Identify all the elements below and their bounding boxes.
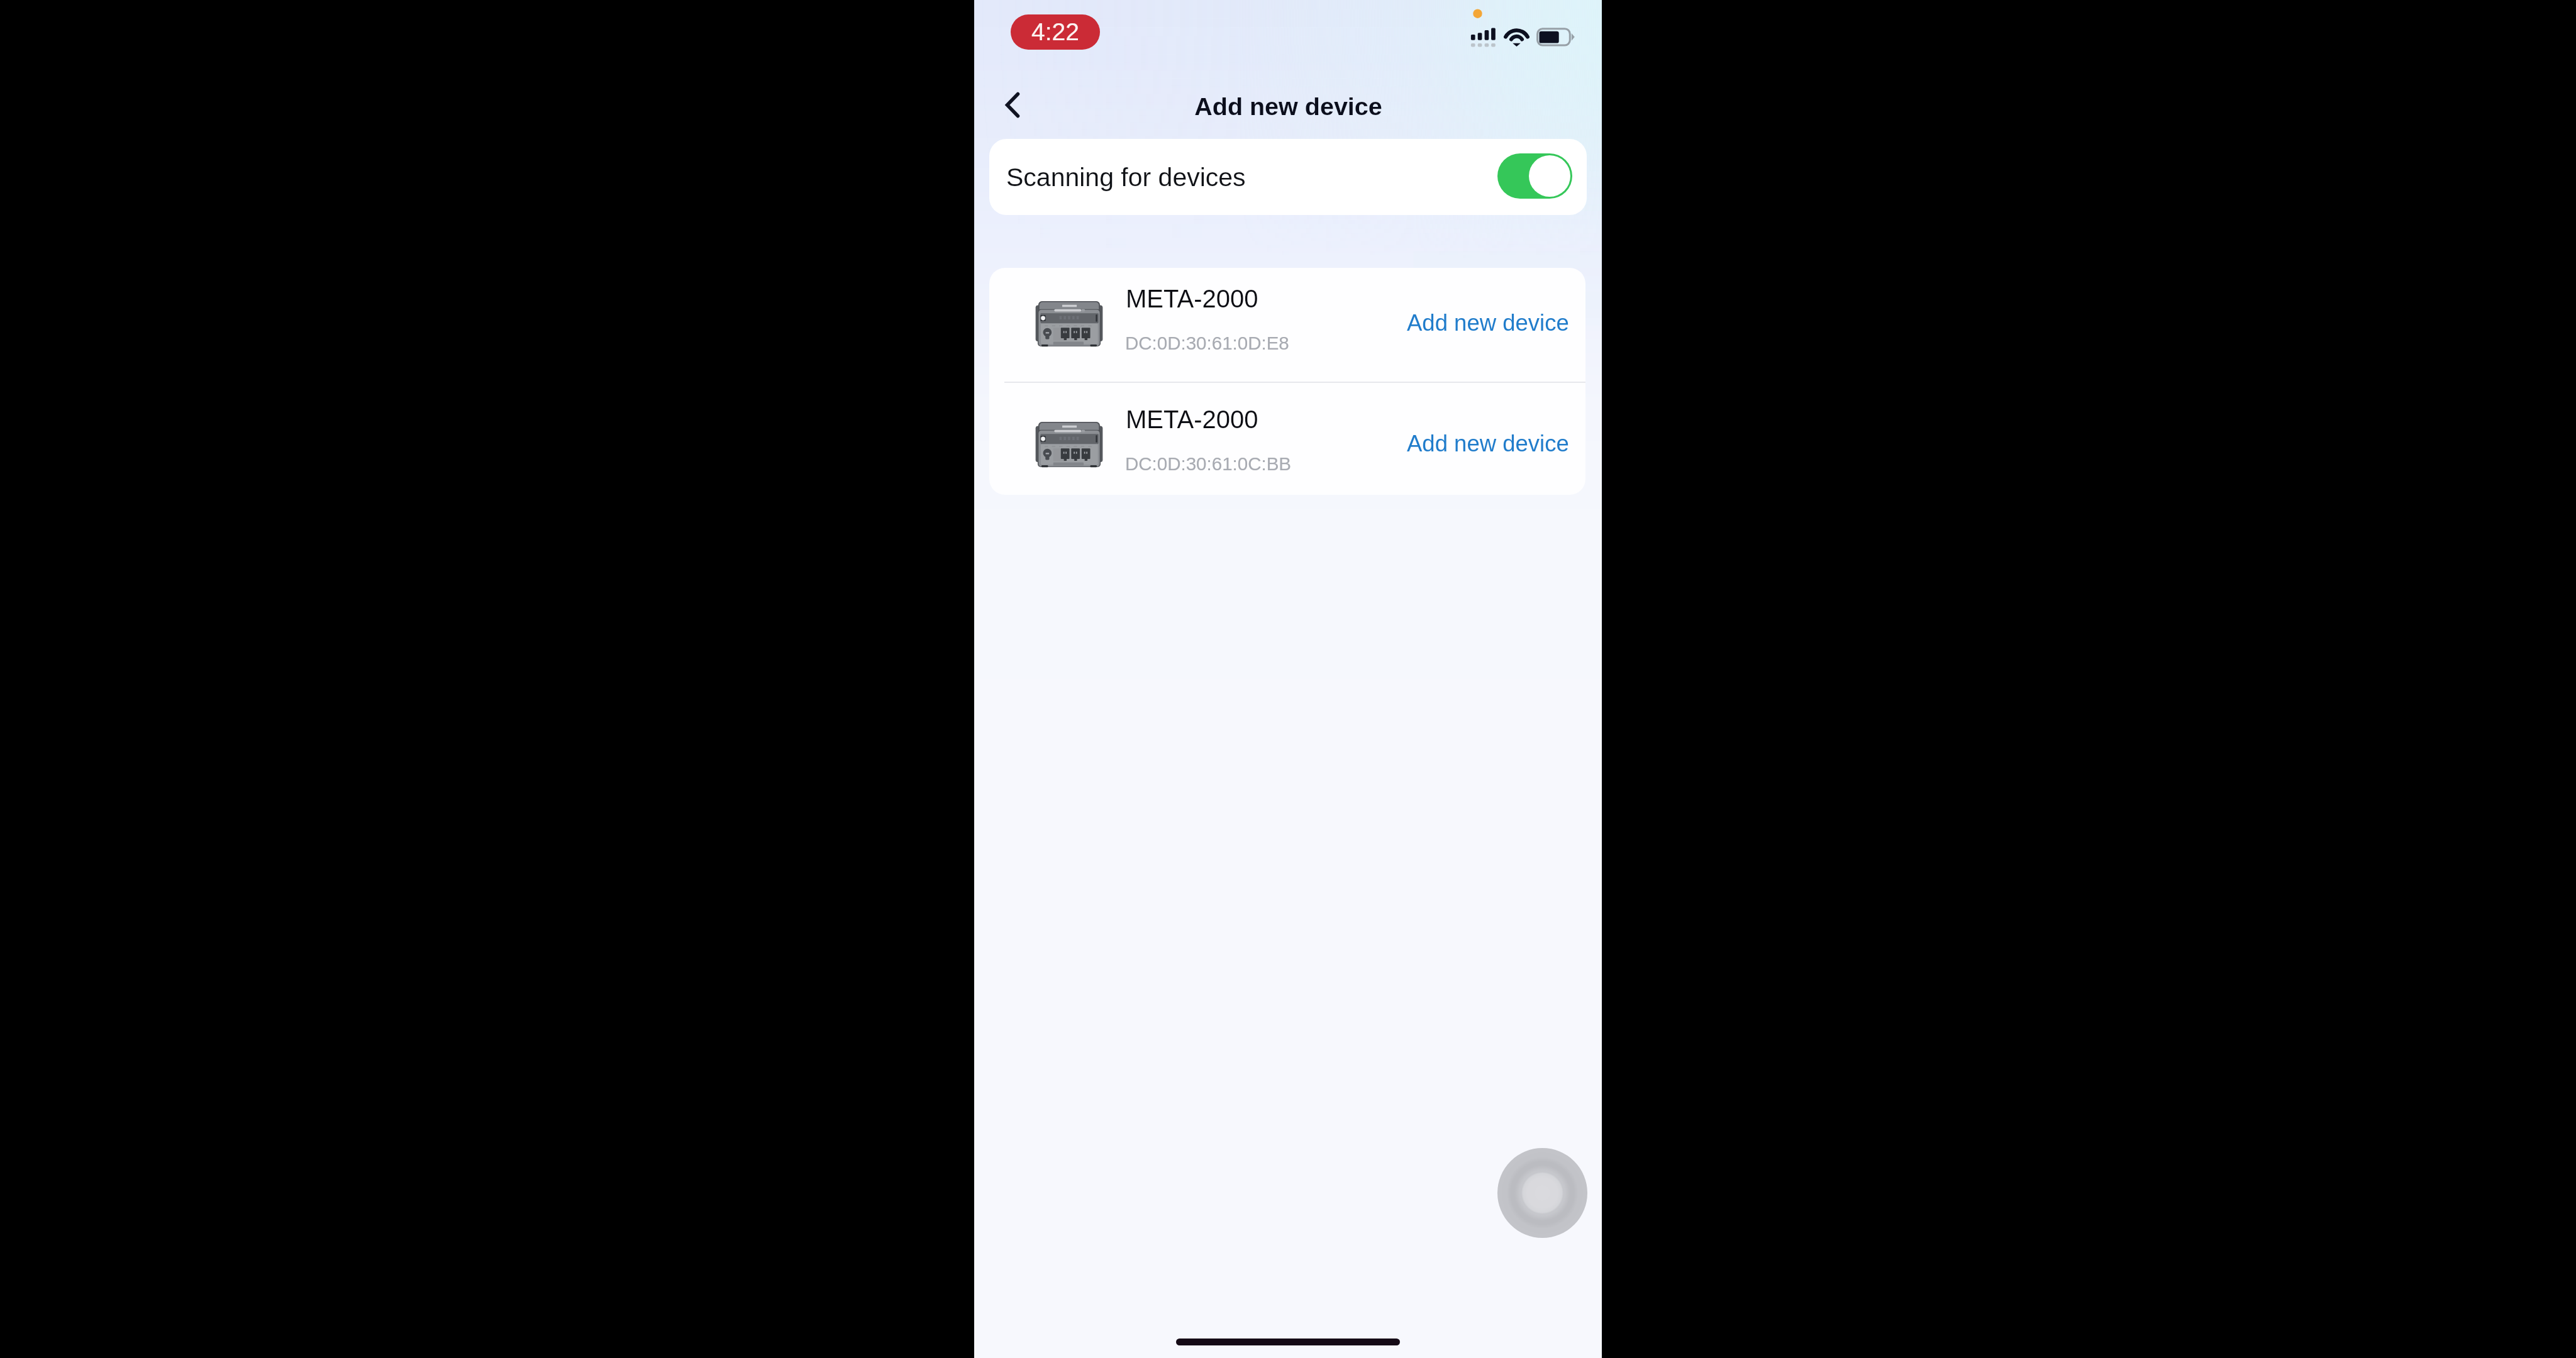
button[interactable]: Back — [989, 82, 1036, 128]
button[interactable]: Add new device — [1399, 424, 1577, 463]
staticText: Scanning for devices — [1006, 163, 1246, 192]
staticText: META-2000 — [1126, 285, 1258, 313]
button[interactable]: Add device — [1497, 1148, 1587, 1238]
staticText: Add new device — [1194, 92, 1382, 120]
button[interactable]: META-2000 — [989, 268, 1585, 382]
button[interactable]: Add new device — [1399, 304, 1577, 342]
staticText: 4:22 — [1031, 18, 1079, 46]
staticText: DC:0D:30:61:0C:BB — [1125, 453, 1291, 474]
button[interactable]: Scanning for devices toggle, on — [1497, 153, 1572, 199]
staticText: DC:0D:30:61:0D:E8 — [1125, 333, 1289, 353]
button[interactable]: Scanning for devices — [989, 139, 1587, 215]
staticText: META-2000 — [1126, 406, 1258, 434]
button[interactable]: META-2000 — [989, 382, 1585, 495]
